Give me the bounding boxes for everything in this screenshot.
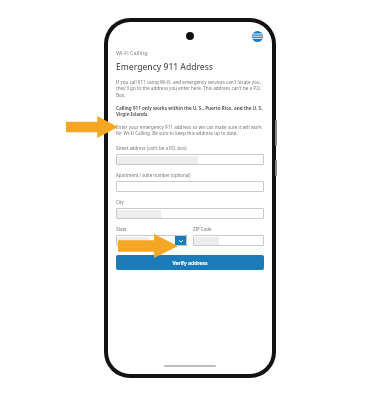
- staticText: State: [116, 226, 127, 232]
- staticText: Street address (can't be a P.O. box): [116, 145, 187, 151]
- button[interactable]: [193, 235, 264, 246]
- staticText: City: [116, 199, 124, 205]
- staticText: Wi-Fi Calling: [116, 49, 148, 56]
- staticText: Emergency 911 Address: [116, 61, 213, 73]
- staticText: Calling 911 only works within the U. S.,…: [116, 105, 264, 118]
- button[interactable]: Select state: [116, 235, 187, 246]
- button[interactable]: [116, 208, 264, 219]
- staticText: If you call 911 using Wi-Fi, and emergen…: [116, 79, 264, 99]
- staticText: Verify address: [172, 259, 208, 266]
- button[interactable]: Verify address: [116, 255, 264, 270]
- other: AT&T logo: [252, 31, 263, 42]
- staticText: Apartment / suite number (optional): [116, 172, 191, 178]
- staticText: Enter your emergency 911 address so we c…: [116, 124, 264, 137]
- staticText: ZIP Code: [193, 226, 212, 232]
- button[interactable]: [116, 181, 264, 192]
- button[interactable]: [116, 154, 264, 165]
